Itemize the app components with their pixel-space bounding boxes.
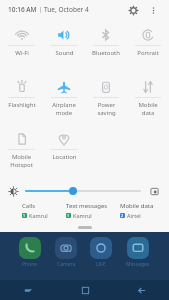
staticText: Messages: [126, 261, 150, 268]
button[interactable]: Wi-Fi: [0, 23, 43, 75]
button[interactable]: Settings: [125, 2, 141, 18]
staticText: 1: [23, 213, 26, 218]
staticText: Mobile Hotspot: [10, 153, 33, 169]
staticText: 10:16 AM: [8, 5, 37, 14]
button[interactable]: Back: [113, 280, 169, 300]
button[interactable]: Phone: [19, 237, 41, 268]
staticText: Mobile data: [120, 202, 154, 210]
staticText: Bluetooth: [92, 49, 120, 57]
button[interactable]: Camera: [55, 237, 77, 268]
button[interactable]: Calls: [22, 202, 66, 224]
button[interactable]: Portrait: [127, 23, 169, 75]
button[interactable]: Recents: [0, 280, 57, 300]
button[interactable]: Home: [57, 280, 113, 300]
staticText: Calls: [22, 202, 36, 210]
button[interactable]: Airplane mode: [43, 75, 85, 127]
staticText: Flashlight: [8, 101, 36, 109]
staticText: Phone: [22, 261, 38, 268]
button[interactable]: Auto brightness: [148, 185, 160, 197]
staticText: Location: [52, 153, 77, 161]
button[interactable]: Location: [43, 127, 85, 179]
staticText: LIFE: [96, 261, 106, 268]
button[interactable]: Mobile data: [120, 202, 163, 224]
button[interactable]: More options: [145, 2, 161, 18]
staticText: Text messages: [66, 202, 108, 210]
staticText: Mobile data: [138, 101, 158, 117]
button[interactable]: LIFE: [90, 237, 112, 268]
staticText: Airplane mode: [52, 101, 76, 117]
staticText: Portrait: [137, 49, 159, 57]
staticText: Wi-Fi: [15, 49, 29, 57]
button[interactable]: Flashlight: [0, 75, 43, 127]
staticText: Kamrul: [73, 212, 92, 219]
staticText: 2: [121, 213, 124, 218]
staticText: Kamrul: [29, 212, 48, 219]
staticText: 1: [67, 213, 70, 218]
staticText: Power saving: [97, 101, 116, 117]
button[interactable]: Mobile data: [127, 75, 169, 127]
button[interactable]: Sound: [43, 23, 85, 75]
button[interactable]: Bluetooth: [85, 23, 127, 75]
button[interactable]: Text messages: [66, 202, 120, 224]
button[interactable]: Power saving: [85, 75, 127, 127]
button[interactable]: Mobile Hotspot: [0, 127, 43, 179]
staticText: Sound: [55, 49, 74, 57]
staticText: Tue, October 4: [44, 5, 89, 14]
staticText: Camera: [57, 261, 76, 268]
button[interactable]: Messages: [126, 237, 150, 268]
staticText: Airtel: [127, 212, 141, 219]
